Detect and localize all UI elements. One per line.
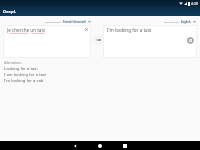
button[interactable]: Translate bbox=[93, 34, 104, 45]
staticText: DeepL bbox=[3, 9, 17, 15]
staticText: Translate from bbox=[45, 21, 61, 24]
staticText: Looking for a taxi bbox=[4, 66, 38, 72]
button[interactable]: Clear text bbox=[84, 27, 89, 32]
button[interactable]: French (detected) bbox=[63, 20, 91, 24]
staticText: French (detected) bbox=[63, 20, 86, 24]
button[interactable]: I'm looking for a cab bbox=[0, 78, 102, 84]
staticText: I'm looking for a taxi bbox=[107, 27, 152, 33]
staticText: Translate into bbox=[164, 21, 179, 24]
button[interactable]: Recent apps bbox=[119, 141, 131, 150]
staticText: Alternatives: bbox=[4, 61, 22, 65]
button[interactable]: Home bbox=[94, 141, 106, 150]
staticText: 4:30 bbox=[191, 1, 198, 6]
staticText: I am looking for a taxi bbox=[4, 72, 47, 78]
staticText: English bbox=[181, 20, 191, 24]
button[interactable]: Looking for a taxi bbox=[0, 66, 102, 72]
staticText: Je cherche un taxi bbox=[7, 27, 46, 33]
button[interactable]: Copy translation bbox=[186, 36, 194, 44]
staticText: I'm looking for a cab bbox=[4, 78, 44, 84]
button[interactable]: Back bbox=[69, 141, 81, 150]
button[interactable]: I am looking for a taxi bbox=[0, 72, 102, 78]
button[interactable]: English bbox=[181, 20, 196, 24]
